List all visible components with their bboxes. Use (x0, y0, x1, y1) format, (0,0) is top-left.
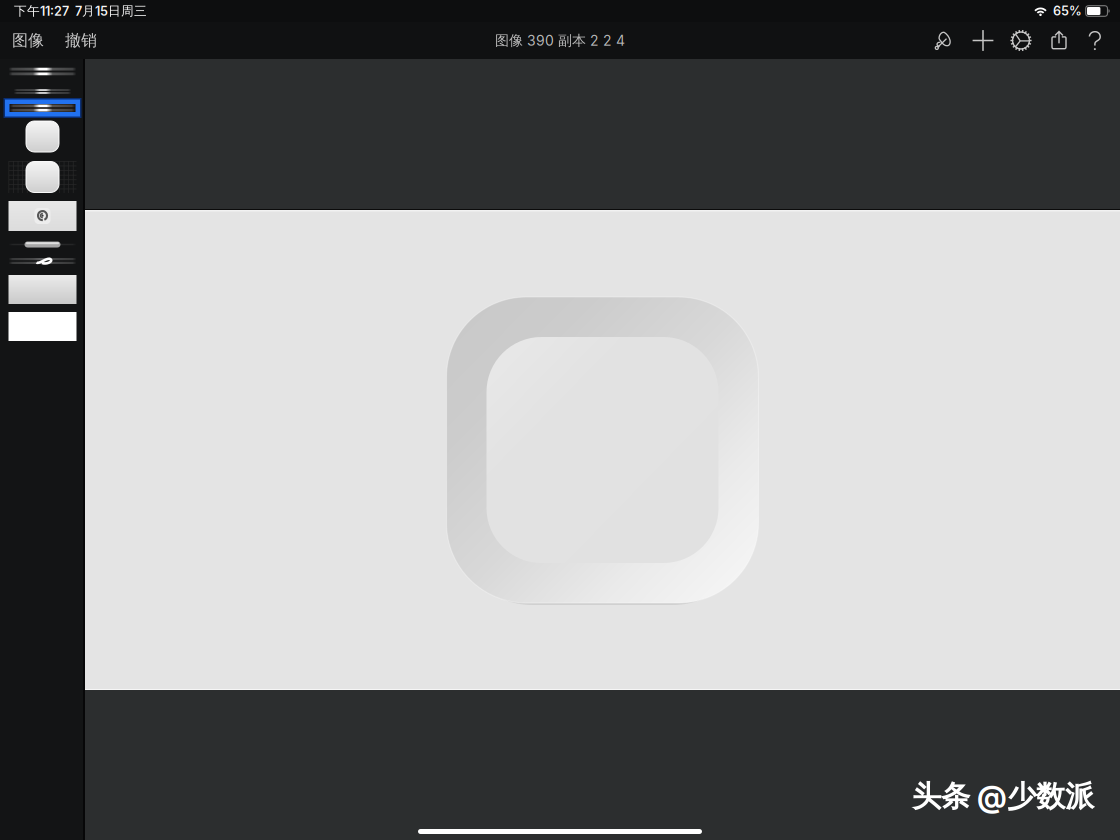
staticText: 下午11:27 (14, 3, 69, 19)
button[interactable]: Layer 8 (8, 255, 76, 267)
staticText: 图像 (12, 30, 44, 51)
button[interactable]: 图像 (10, 22, 46, 59)
button[interactable]: Layer 10 (8, 312, 76, 341)
button[interactable]: Brush (926, 22, 964, 59)
button[interactable]: Layer 4 (8, 121, 76, 152)
button[interactable]: Layer 1 (8, 63, 76, 80)
staticText: 头条 @少数派 (912, 778, 1094, 815)
button[interactable]: Share (1040, 22, 1078, 59)
button[interactable]: Layer 5 (8, 161, 76, 193)
button[interactable]: 撤销 (61, 22, 101, 59)
button[interactable]: Layer 7 (8, 240, 76, 249)
staticText: 7月15日周三 (75, 3, 147, 19)
button[interactable]: Layer 9 (8, 275, 76, 304)
button[interactable]: Layer 3, selected (3, 98, 81, 118)
button[interactable]: Layer 2 (8, 87, 76, 96)
button[interactable]: Help (1078, 22, 1112, 59)
staticText: 图像 390 副本 2 2 4 (495, 32, 625, 49)
button[interactable]: Add (964, 22, 1002, 59)
button[interactable]: Adjustments (1002, 22, 1040, 59)
button[interactable]: Layer 6 (8, 201, 76, 231)
staticText: 撤销 (65, 30, 97, 51)
staticText: 65% (1053, 3, 1082, 19)
